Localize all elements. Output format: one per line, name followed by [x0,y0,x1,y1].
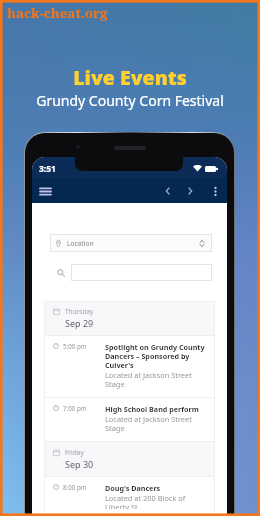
button[interactable]: 8:00 pm [44,477,215,516]
button[interactable]: Menu [36,182,54,200]
button[interactable]: Location [50,234,212,252]
staticText: Doug's Dancers [105,483,161,493]
staticText: Thursday [65,307,94,316]
staticText: Sep 30 [65,458,94,470]
button[interactable]: Next [181,182,199,200]
button[interactable] [71,264,212,281]
staticText: Grundy County Corn Festival [36,91,224,110]
button[interactable]: More options [207,183,223,199]
staticText: High School Band perform [105,404,199,414]
button[interactable]: 5:00 pm [44,336,215,397]
staticText: 5:00 pm [63,342,87,350]
staticText: Spotlight on Grundy County Dancers – Spo… [105,342,207,370]
staticText: Located at Jackson Street Stage [105,370,207,390]
button[interactable]: 7:00 pm [44,398,215,441]
staticText: Located at Jackson Street Stage [105,414,207,434]
staticText: Location [67,239,94,248]
staticText: Sep 29 [65,317,94,329]
staticText: Live Events [73,64,187,91]
staticText: 3:51 [39,163,56,175]
staticText: Friday [65,448,84,457]
staticText: hack-cheat.org [7,4,108,22]
staticText: Located at 200 Block of Liberty St. [105,493,207,509]
staticText: 7:00 pm [63,404,87,412]
staticText: 8:00 pm [63,483,87,491]
button[interactable]: Previous [159,182,177,200]
